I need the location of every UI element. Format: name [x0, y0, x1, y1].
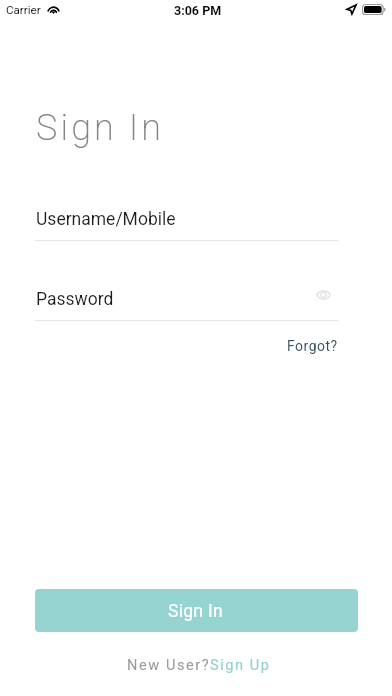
- button[interactable]: Password: [35, 289, 338, 321]
- staticText: Forgot?: [287, 338, 338, 354]
- staticText: Sign In: [168, 601, 224, 622]
- staticText: Username/Mobile: [36, 209, 176, 230]
- other: Wi-Fi: [47, 4, 60, 14]
- staticText: New User?: [127, 656, 211, 673]
- other: Location: [347, 5, 356, 14]
- staticText: Sign In: [36, 107, 165, 149]
- button[interactable]: Forgot?: [281, 335, 344, 357]
- button[interactable]: Show password: [311, 283, 335, 307]
- button[interactable]: Sign Up: [210, 656, 271, 673]
- staticText: 3:06 PM: [174, 3, 222, 18]
- button[interactable]: Sign In: [35, 589, 358, 632]
- staticText: Carrier: [6, 3, 41, 17]
- staticText: Sign Up: [210, 656, 271, 673]
- button[interactable]: Username/Mobile: [35, 209, 338, 241]
- staticText: Password: [36, 289, 114, 310]
- other: Battery full: [362, 4, 386, 15]
